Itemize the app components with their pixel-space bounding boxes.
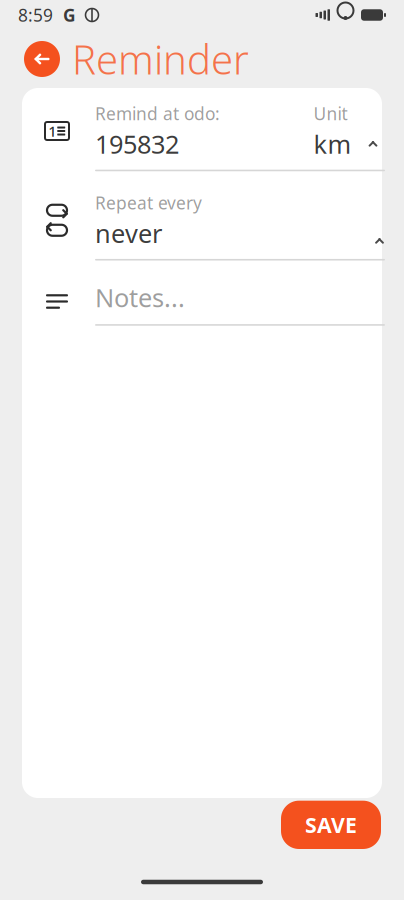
- staticText: km: [313, 127, 351, 161]
- button[interactable]: Back: [24, 41, 60, 77]
- staticText: Notes...: [95, 280, 185, 314]
- staticText: SAVE: [305, 811, 357, 839]
- staticText: Reminder: [72, 32, 249, 85]
- staticText: G: [63, 3, 76, 26]
- button[interactable]: Notes...: [22, 280, 382, 326]
- staticText: Repeat every: [95, 191, 202, 214]
- button[interactable]: SAVE: [281, 801, 381, 849]
- staticText: 8:59: [18, 3, 53, 26]
- staticText: 195832: [95, 127, 179, 161]
- staticText: Unit: [313, 102, 347, 125]
- staticText: 1: [48, 121, 56, 141]
- button[interactable]: Repeat every: [22, 191, 382, 261]
- staticText: Remind at odo:: [95, 102, 220, 125]
- staticText: never: [95, 216, 162, 250]
- button[interactable]: 1: [22, 102, 382, 171]
